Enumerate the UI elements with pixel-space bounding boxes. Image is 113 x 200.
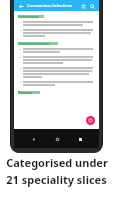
staticText: Diagnosis: [18, 91, 33, 94]
button[interactable]: Home: [52, 134, 62, 144]
staticText: 21 speciality slices: [6, 172, 107, 187]
button[interactable]: Back: [28, 134, 38, 144]
staticText: Clinical presentation: [18, 42, 49, 45]
button[interactable]: Bookmark: [79, 2, 87, 10]
staticText: Categorised under: [6, 155, 108, 170]
staticText: Epidemiology: [18, 15, 39, 18]
button[interactable]: Back: [17, 2, 25, 10]
button[interactable]: Search: [88, 2, 96, 10]
button[interactable]: Quiz: [86, 116, 95, 125]
button[interactable]: Recent apps: [75, 134, 85, 144]
staticText: Coronavirus Infections: [27, 3, 73, 9]
